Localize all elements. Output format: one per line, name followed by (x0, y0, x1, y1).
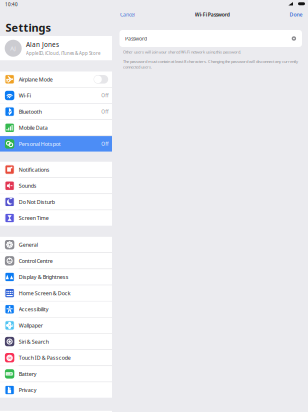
staticText: AJ (10, 44, 16, 52)
staticText: Mobile Data (19, 124, 48, 131)
staticText: The password must contain at least 8 cha… (123, 59, 298, 70)
staticText: Screen Time (19, 214, 49, 222)
staticText: Off (101, 108, 108, 115)
button[interactable]: Wi-Fi (0, 88, 112, 103)
staticText: Other users will join your shared Wi-Fi … (123, 49, 241, 55)
staticText: Done (289, 11, 302, 18)
staticText: Do Not Disturb (19, 198, 55, 205)
staticText: Sounds (19, 182, 37, 189)
button[interactable]: Wallpaper (0, 318, 112, 333)
button[interactable]: Personal Hotspot (0, 136, 112, 152)
button[interactable]: Siri & Search (0, 334, 112, 349)
staticText: General (19, 241, 38, 248)
button[interactable]: Mobile Data (0, 120, 112, 136)
staticText: Password (125, 35, 147, 42)
staticText: Control Centre (19, 257, 53, 264)
staticText: Personal Hotspot (19, 140, 61, 148)
staticText: Accessibility (19, 306, 49, 313)
staticText: Notifications (19, 166, 50, 173)
staticText: Airplane Mode (19, 76, 53, 83)
button[interactable]: Display & Brightness (0, 269, 112, 285)
button[interactable]: AJ (0, 36, 112, 60)
button[interactable]: Cancel (112, 7, 139, 21)
staticText: 10:40 (5, 1, 18, 8)
staticText: Home Screen & Dock (19, 289, 71, 297)
button[interactable]: Sounds (0, 178, 112, 194)
staticText: Wi-Fi (19, 92, 31, 99)
staticText: Off (101, 141, 108, 147)
button[interactable]: Home Screen & Dock (0, 285, 112, 301)
button[interactable]: Notifications (0, 162, 112, 177)
staticText: Display & Brightness (19, 273, 69, 281)
staticText: Off (101, 92, 108, 99)
staticText: Apple ID, iCloud, iTunes & App Store (26, 50, 100, 56)
staticText: Touch ID & Passcode (19, 354, 71, 361)
staticText: Settings (5, 20, 50, 35)
staticText: Cancel (120, 11, 135, 18)
button[interactable]: Privacy (0, 382, 112, 398)
button[interactable]: Bluetooth (0, 104, 112, 119)
staticText: Battery (19, 370, 37, 377)
staticText: Wallpaper (19, 322, 43, 329)
button[interactable]: Done (285, 7, 308, 21)
button[interactable]: Do Not Disturb (0, 194, 112, 210)
button[interactable]: Clear password (290, 35, 297, 42)
button[interactable]: Touch ID & Passcode (0, 350, 112, 366)
button[interactable]: General (0, 237, 112, 252)
staticText: Privacy (19, 386, 37, 394)
staticText: Wi-Fi Password (195, 11, 230, 18)
staticText: Siri & Search (19, 338, 49, 345)
button[interactable]: Screen Time (0, 210, 112, 226)
staticText: Alan Jones (26, 40, 59, 49)
button[interactable]: Battery (0, 366, 112, 382)
staticText: Bluetooth (19, 108, 42, 115)
button[interactable]: Airplane Mode (0, 71, 112, 87)
button[interactable]: Accessibility (0, 301, 112, 317)
button[interactable]: Control Centre (0, 253, 112, 269)
